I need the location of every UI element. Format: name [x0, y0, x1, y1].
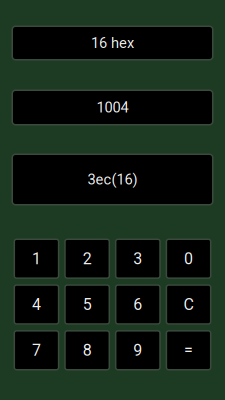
staticText: C — [184, 295, 194, 314]
button[interactable]: = — [166, 330, 211, 370]
button[interactable]: 8 — [64, 330, 110, 370]
staticText: 16 hex — [91, 34, 134, 52]
button[interactable]: 6 — [115, 284, 161, 325]
staticText: 6 — [133, 295, 142, 314]
button[interactable]: 0 — [166, 238, 211, 279]
staticText: 5 — [83, 295, 92, 314]
staticText: 2 — [83, 249, 92, 268]
button[interactable]: C — [166, 284, 211, 325]
button[interactable]: 2 — [64, 238, 110, 279]
staticText: 7 — [32, 341, 41, 360]
staticText: 4 — [32, 295, 41, 314]
button[interactable]: 1 — [14, 238, 59, 279]
staticText: = — [184, 341, 193, 360]
staticText: 1004 — [96, 99, 128, 116]
staticText: 9 — [133, 341, 142, 360]
button[interactable]: 3 — [115, 238, 161, 279]
button[interactable]: 5 — [64, 284, 110, 325]
staticText: 3 — [133, 249, 142, 268]
staticText: 8 — [83, 341, 92, 360]
button[interactable]: 7 — [14, 330, 59, 370]
button[interactable]: 9 — [115, 330, 161, 370]
staticText: 3ec(16) — [87, 171, 137, 188]
staticText: 1 — [32, 249, 41, 268]
button[interactable]: 4 — [14, 284, 59, 325]
staticText: 0 — [184, 249, 193, 268]
